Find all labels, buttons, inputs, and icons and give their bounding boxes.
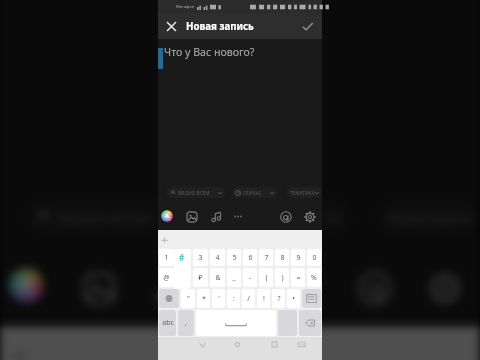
staticText: ' [218, 294, 220, 304]
staticText: = [296, 273, 301, 283]
button[interactable]: @ [159, 268, 174, 287]
button[interactable]: 1 [159, 249, 174, 266]
staticText: @ [163, 273, 170, 283]
button[interactable]: 4 [210, 249, 225, 266]
staticText: ВИДНО ВСЕМ [178, 190, 210, 196]
staticText: # [179, 252, 185, 263]
button[interactable]: • [287, 289, 300, 308]
button[interactable]: 0 [307, 249, 321, 266]
button[interactable]: Emoji [302, 289, 321, 308]
button[interactable]: Photo [184, 209, 199, 224]
button[interactable]: Photo [76, 265, 120, 309]
staticText: abc [162, 318, 174, 328]
button[interactable]: 3 [193, 249, 208, 266]
staticText: : [233, 294, 235, 304]
button[interactable]: ' [212, 289, 225, 308]
staticText: 3 [198, 253, 203, 263]
button[interactable]: Home [230, 337, 244, 351]
button[interactable]: 6 [243, 249, 257, 266]
button[interactable]: СЕЙЧАС [232, 187, 277, 198]
staticText: СЕЙЧАС [243, 190, 262, 196]
button[interactable]: ₽ [193, 268, 208, 287]
staticText: 9 [296, 253, 301, 263]
button[interactable]: 7 [259, 249, 273, 266]
staticText: ₽ [198, 273, 203, 283]
button[interactable]: Background colour [161, 210, 173, 222]
button[interactable]: Background colour [8, 268, 44, 303]
button[interactable]: Publish [294, 13, 320, 39]
staticText: & [215, 273, 221, 283]
button[interactable]: Mention [351, 265, 395, 309]
staticText: Что у Вас нового? [164, 45, 255, 59]
staticText: • [292, 294, 295, 304]
staticText: ? [277, 294, 281, 304]
staticText: 8 [280, 253, 285, 263]
button[interactable]: Back [195, 337, 209, 351]
button[interactable]: * [197, 289, 210, 308]
staticText: Мегафон [176, 4, 195, 10]
button[interactable]: ВИДНО ВСЕМ [167, 187, 225, 198]
staticText: 7 [264, 253, 269, 263]
button[interactable]: : [227, 289, 240, 308]
staticText: " [187, 294, 190, 304]
button[interactable]: 8 [275, 249, 289, 266]
staticText: * [202, 294, 206, 304]
button[interactable]: 5 [227, 249, 241, 266]
button[interactable]: - [243, 268, 257, 287]
button[interactable]: _ [227, 268, 241, 287]
button[interactable]: = [291, 268, 305, 287]
button[interactable]: 9 [291, 249, 305, 266]
staticText: A [165, 212, 169, 220]
staticText: 4 [215, 253, 220, 263]
staticText: 1 [164, 253, 169, 263]
staticText: 0 [312, 253, 317, 263]
button[interactable]: ТЕМАТИКА [287, 187, 322, 198]
button[interactable]: More [214, 265, 255, 306]
staticText: / [247, 294, 250, 304]
button[interactable]: Settings [302, 209, 317, 224]
button[interactable]: Close [159, 13, 184, 39]
button[interactable]: " [181, 289, 195, 308]
button[interactable]: ) [275, 268, 289, 287]
staticText: ( [265, 273, 268, 283]
button[interactable]: / [242, 289, 255, 308]
staticText: 5 [232, 253, 237, 263]
staticText: - [249, 273, 252, 283]
staticText: Новая запись [186, 20, 254, 33]
staticText: ) [281, 273, 284, 283]
button[interactable]: % [307, 268, 321, 287]
staticText: A [20, 274, 32, 297]
button[interactable] [176, 249, 191, 266]
button[interactable]: Settings [422, 265, 466, 309]
button[interactable]: ? [272, 289, 285, 308]
staticText: _ [232, 273, 236, 283]
button[interactable]: ( [259, 268, 273, 287]
button[interactable]: Key 2 [174, 249, 190, 289]
button[interactable]: ! [257, 289, 270, 308]
button[interactable]: СЕЙЧАС [217, 200, 348, 233]
staticText: , [185, 318, 187, 328]
staticText: 6 [248, 253, 253, 263]
button[interactable]: Mention [278, 209, 293, 224]
button[interactable]: abc [159, 310, 176, 336]
button[interactable]: Music [146, 265, 190, 309]
staticText: % [311, 273, 317, 283]
button[interactable]: Music [208, 209, 223, 224]
button[interactable]: & [210, 268, 225, 287]
button[interactable]: Switch keyboard [294, 337, 308, 351]
button[interactable]: ВИДНО ВСЕМ [26, 200, 196, 233]
button[interactable]: Recents [267, 337, 281, 351]
button[interactable]: Symbols [159, 289, 179, 308]
button[interactable]: , [178, 310, 194, 336]
button[interactable]: Space [196, 310, 276, 336]
staticText: СЕЙЧАС [249, 209, 304, 227]
button[interactable]: More [231, 209, 245, 223]
staticText: ! [263, 294, 265, 304]
button[interactable]: Backspace [299, 310, 321, 336]
staticText: ТЕМАТИКА [290, 190, 315, 196]
